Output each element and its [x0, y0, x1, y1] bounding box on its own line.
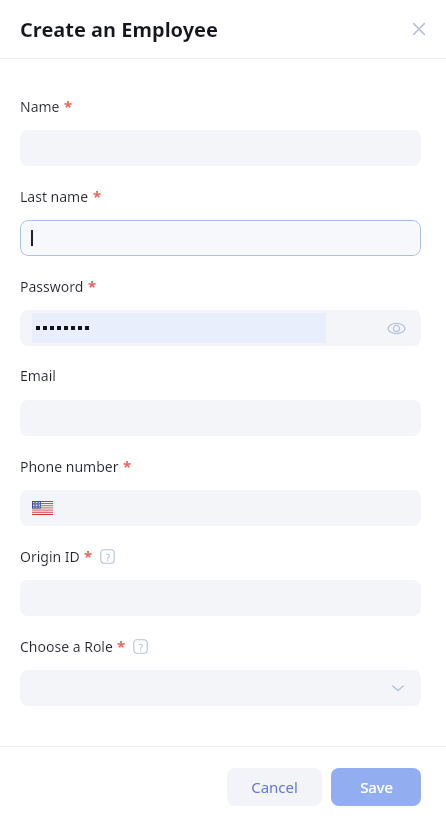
staticText: ? [106, 551, 110, 563]
staticText: Last name [20, 187, 89, 206]
staticText: Password [20, 277, 84, 296]
staticText: Cancel [251, 777, 298, 797]
button[interactable]: Cancel [227, 768, 322, 806]
staticText: * [64, 96, 73, 116]
button[interactable]: Show password [385, 317, 407, 339]
button[interactable]: Save [331, 768, 421, 806]
staticText: * [117, 636, 126, 656]
staticText: * [84, 546, 93, 566]
staticText: ? [139, 641, 143, 653]
staticText: Name [20, 97, 60, 116]
staticText: * [93, 186, 102, 206]
staticText: Save [360, 777, 393, 797]
button[interactable]: Help [100, 549, 115, 564]
staticText: Email [20, 366, 56, 385]
staticText: Choose a Role [20, 637, 113, 656]
staticText: Origin ID [20, 547, 80, 566]
button[interactable]: Show password [20, 310, 421, 346]
button[interactable] [20, 490, 421, 526]
staticText: Create an Employee [20, 16, 218, 43]
button[interactable]: Close [404, 14, 434, 44]
button[interactable] [20, 220, 421, 256]
staticText: * [123, 456, 132, 476]
staticText: Phone number [20, 457, 119, 476]
staticText: * [88, 276, 97, 296]
button[interactable]: Help [133, 639, 148, 654]
